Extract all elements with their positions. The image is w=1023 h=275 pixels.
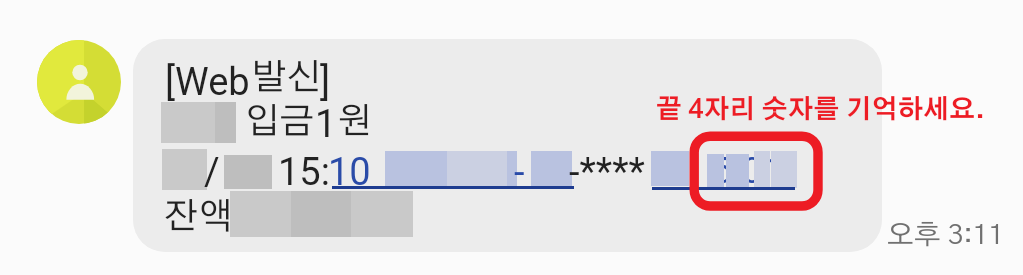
staticText: 잔액 [164, 199, 234, 235]
staticText: 10 [328, 150, 371, 195]
staticText: 0 [742, 150, 763, 192]
staticText: 원 [337, 104, 372, 140]
staticText: 끝 4자리 숫자를 기억하세요. [656, 97, 985, 123]
staticText: 1 [764, 150, 785, 192]
staticText: 15: [278, 150, 330, 195]
staticText: / [204, 150, 220, 195]
staticText: - [514, 150, 525, 195]
staticText: 오후 3:11 [887, 222, 1004, 250]
button[interactable]: Contact avatar [37, 40, 121, 124]
staticText: 입금 [245, 104, 315, 140]
staticText: ] [320, 60, 331, 105]
button[interactable] [133, 39, 882, 252]
staticText: [Web [165, 60, 250, 105]
staticText: 1 [315, 102, 337, 147]
staticText: -**** [569, 150, 645, 195]
staticText: 5 [712, 150, 733, 192]
staticText: 발신 [252, 60, 322, 96]
